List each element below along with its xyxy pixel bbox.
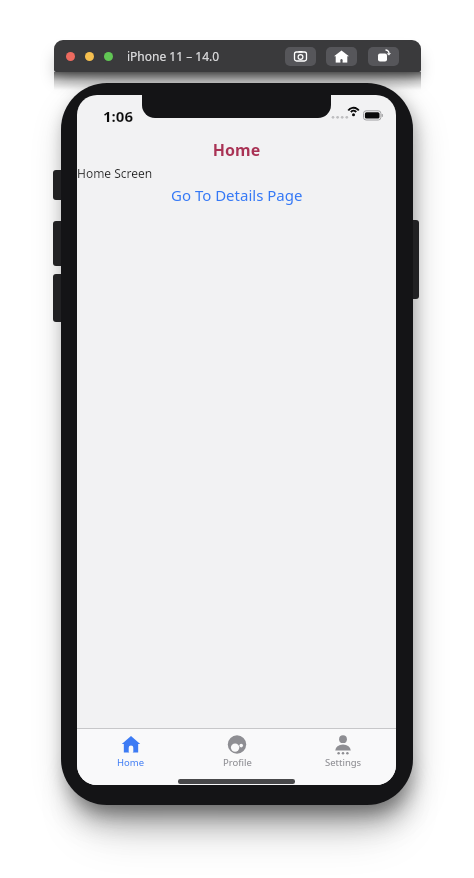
button[interactable] xyxy=(368,47,399,66)
button[interactable] xyxy=(66,52,75,61)
staticText: Home xyxy=(77,139,396,161)
staticText: Profile xyxy=(223,756,252,769)
button[interactable]: Settings xyxy=(290,728,396,785)
staticText: 1:06 xyxy=(103,106,133,126)
button[interactable] xyxy=(326,47,357,66)
button[interactable] xyxy=(104,52,113,61)
button[interactable] xyxy=(285,47,316,66)
staticText: Home Screen xyxy=(77,165,153,181)
button[interactable] xyxy=(85,52,94,61)
button[interactable]: Go To Details Page xyxy=(171,185,303,205)
staticText: iPhone 11 – 14.0 xyxy=(127,48,220,64)
staticText: Settings xyxy=(325,756,362,769)
button[interactable]: Home xyxy=(77,728,184,785)
staticText: Home xyxy=(117,756,145,769)
button[interactable]: Profile xyxy=(184,728,290,785)
